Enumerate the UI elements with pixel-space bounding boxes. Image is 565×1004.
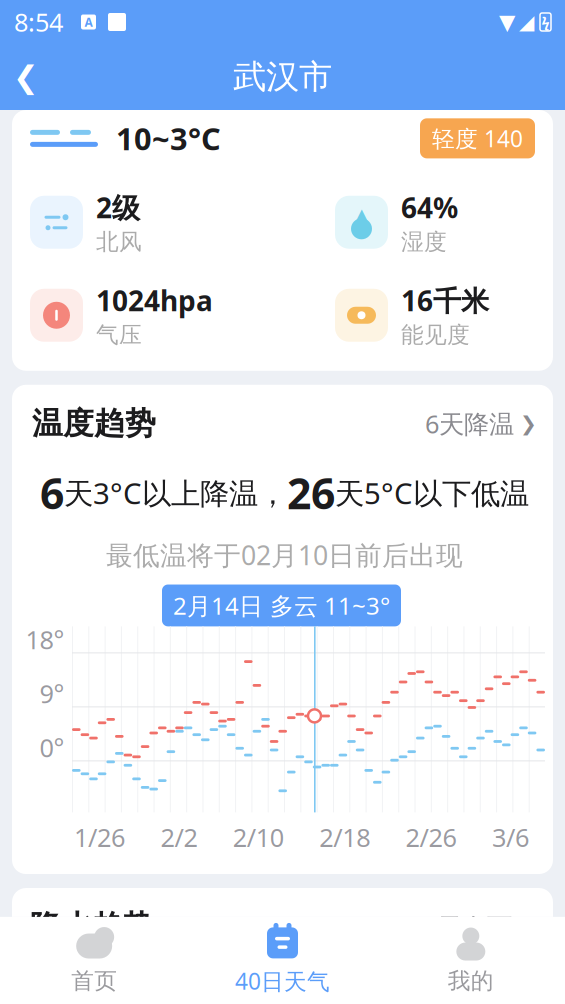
staticText: 1/26 <box>74 820 125 854</box>
staticText: 1024hpa <box>96 282 213 319</box>
staticText: 6 <box>40 464 64 521</box>
staticText: 最低温将于02月10日前后出现 <box>106 537 463 572</box>
staticText: 降水趋势 <box>30 908 154 946</box>
staticText: 首页 <box>71 967 117 995</box>
button[interactable]: 6天降温 <box>425 407 537 440</box>
staticText: 10~3°C <box>116 118 221 159</box>
staticText: ▲ <box>355 205 367 223</box>
staticText: 温度趋势 <box>32 405 156 442</box>
staticText: 武汉市 <box>233 56 332 97</box>
staticText: ◢ <box>519 11 534 33</box>
staticText: 2级 <box>96 189 140 226</box>
button[interactable]: 我的 <box>377 918 565 1003</box>
staticText: 轻度 140 <box>432 123 523 153</box>
staticText: 2/18 <box>319 820 370 854</box>
staticText: 北风 <box>96 228 142 256</box>
staticText: 天5°C以下低温 <box>335 473 529 512</box>
staticText: 天3°C以上降温， <box>64 473 287 512</box>
button[interactable]: 5天有雨 <box>423 910 535 944</box>
button[interactable]: 首页 <box>0 918 188 1003</box>
staticText: 9° <box>39 677 64 710</box>
staticText: 我的 <box>448 967 494 995</box>
staticText: 2/2 <box>160 820 197 854</box>
staticText: ❯ <box>520 412 537 435</box>
staticText: ϟ <box>541 12 549 32</box>
staticText: 3/6 <box>492 820 529 854</box>
button[interactable]: 40日天气 <box>188 917 377 1004</box>
staticText: 湿度 <box>401 228 447 256</box>
staticText: ▼ <box>499 10 515 34</box>
staticText: 5天有雨 <box>423 910 512 944</box>
staticText: 2/10 <box>233 820 284 854</box>
staticText: 64% <box>401 189 458 226</box>
staticText: 能见度 <box>401 321 470 349</box>
staticText: A <box>84 14 92 30</box>
staticText: 2/26 <box>406 820 457 854</box>
staticText: 26 <box>287 464 335 521</box>
staticText: 0° <box>39 731 64 764</box>
button[interactable]: Back <box>0 49 52 105</box>
staticText: 40日天气 <box>235 966 330 996</box>
staticText: 气压 <box>96 321 142 349</box>
staticText: 16千米 <box>401 282 489 319</box>
staticText: 18° <box>25 623 64 656</box>
staticText: 6天降温 <box>425 407 514 440</box>
staticText: 2月14日 多云 11~3° <box>173 589 390 621</box>
staticText: ❮ <box>13 60 39 94</box>
staticText: 8:54 <box>14 5 63 39</box>
